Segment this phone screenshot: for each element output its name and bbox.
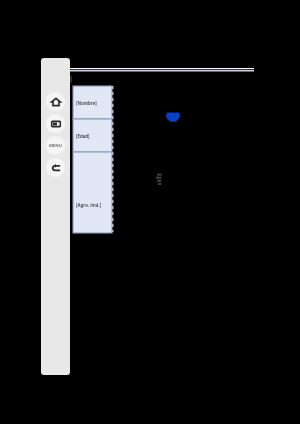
- button[interactable]: [Agro. imá.]: [73, 152, 112, 233]
- button[interactable]: Back: [46, 158, 65, 177]
- button[interactable]: Home: [46, 92, 65, 111]
- staticText: [Edad]: [76, 133, 90, 139]
- staticText: [Nombre]: [76, 100, 97, 106]
- button[interactable]: MENU: [46, 136, 65, 155]
- staticText: MENU: [49, 143, 62, 149]
- staticText: [Agro. imá.]: [76, 202, 102, 208]
- button[interactable]: Display: [46, 114, 65, 133]
- button[interactable]: [Edad]: [73, 119, 112, 152]
- button[interactable]: [Nombre]: [73, 86, 112, 119]
